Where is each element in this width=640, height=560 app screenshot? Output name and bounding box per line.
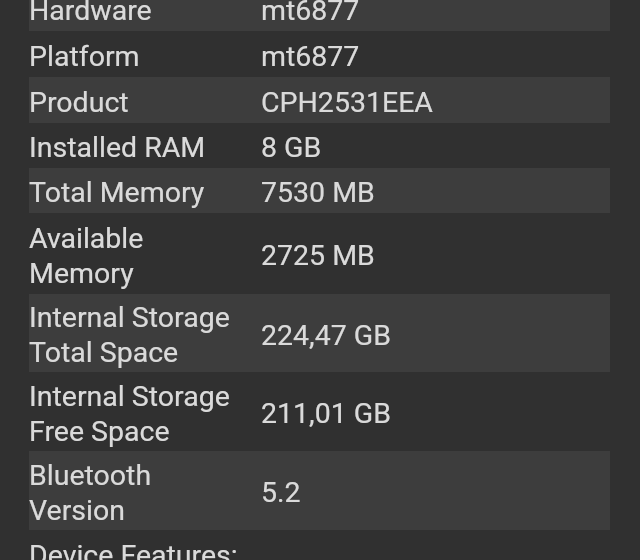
button[interactable]: Device Features: (0, 530, 640, 560)
button[interactable]: Hardware (0, 0, 640, 31)
button[interactable]: Platform (0, 31, 640, 77)
staticText: mt6877 (261, 40, 360, 73)
staticText: 8 GB (261, 131, 322, 164)
staticText: Device Features: (29, 539, 238, 560)
button[interactable]: Total Memory (0, 168, 640, 213)
staticText: Total Memory (29, 176, 205, 209)
button[interactable]: Internal Storage Total Space (0, 294, 640, 372)
button[interactable]: Bluetooth Version (0, 451, 640, 530)
button[interactable]: Internal Storage Free Space (0, 372, 640, 451)
staticText: 7530 MB (261, 176, 375, 209)
staticText: Installed RAM (29, 131, 206, 164)
staticText: 211,01 GB (261, 397, 391, 430)
staticText: mt6877 (261, 0, 360, 27)
staticText: 224,47 GB (261, 319, 391, 352)
staticText: Available Memory (29, 222, 144, 290)
staticText: Platform (29, 40, 140, 73)
button[interactable]: Available Memory (0, 213, 640, 294)
staticText: Product (29, 86, 129, 119)
staticText: Bluetooth Version (29, 459, 152, 527)
button[interactable]: Product (0, 77, 640, 123)
staticText: Hardware (29, 0, 152, 27)
staticText: CPH2531EEA (261, 86, 433, 119)
staticText: Internal Storage Free Space (29, 380, 230, 448)
staticText: 5.2 (261, 476, 301, 509)
staticText: Internal Storage Total Space (29, 301, 230, 369)
staticText: 2725 MB (261, 239, 375, 272)
button[interactable]: Installed RAM (0, 123, 640, 168)
